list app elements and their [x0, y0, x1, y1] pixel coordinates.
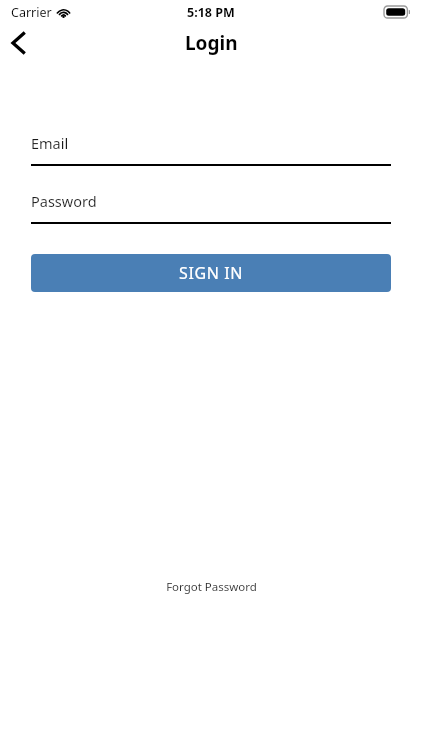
- staticText: Forgot Password: [166, 579, 257, 595]
- button[interactable]: Back: [2, 26, 36, 60]
- staticText: 5:18 PM: [187, 4, 235, 21]
- staticText: Email: [31, 133, 69, 153]
- button[interactable]: Password: [31, 188, 391, 224]
- button[interactable]: Email: [31, 130, 391, 166]
- staticText: Carrier: [11, 4, 52, 21]
- button[interactable]: SIGN IN: [31, 254, 391, 292]
- staticText: Password: [31, 191, 97, 211]
- staticText: Login: [185, 30, 238, 56]
- staticText: SIGN IN: [179, 262, 243, 284]
- button[interactable]: Forgot Password: [156, 577, 267, 597]
